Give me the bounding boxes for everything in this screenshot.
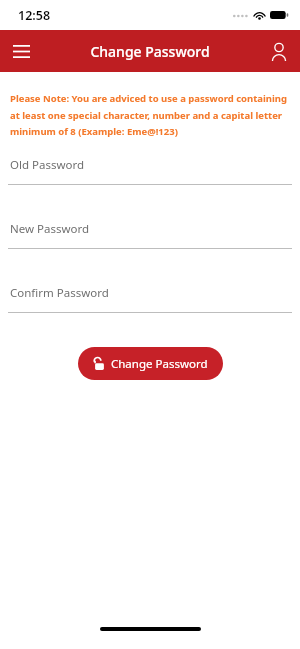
staticText: Change Password <box>111 356 208 372</box>
staticText: Please Note: You are adviced to use a pa… <box>10 92 288 137</box>
button[interactable]: Profile <box>258 30 300 72</box>
staticText: Change Password <box>90 42 210 61</box>
button[interactable]: Change Password <box>78 347 223 380</box>
button[interactable]: Old Password <box>8 157 292 185</box>
staticText: Old Password <box>10 157 85 173</box>
staticText: 12:58 <box>18 7 51 24</box>
staticText: New Password <box>10 221 90 237</box>
staticText: Confirm Password <box>10 285 109 301</box>
button[interactable]: Open navigation menu <box>0 30 42 72</box>
button[interactable]: Confirm Password <box>8 285 292 313</box>
button[interactable]: New Password <box>8 221 292 249</box>
